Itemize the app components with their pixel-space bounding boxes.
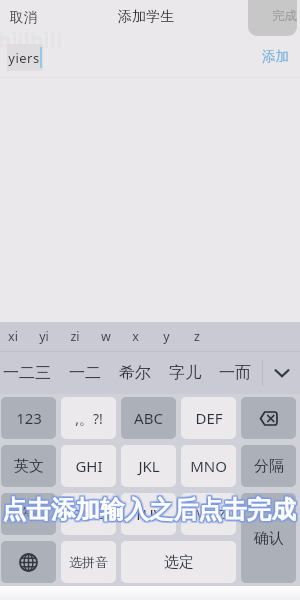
staticText: bilibili: [0, 26, 63, 50]
button[interactable]: 添加: [262, 48, 289, 65]
button[interactable]: PQRS: [61, 493, 116, 535]
staticText: PQRS: [72, 505, 106, 523]
staticText: yi: [39, 328, 49, 345]
button[interactable]: GHI: [61, 445, 116, 487]
staticText: 确认: [254, 529, 284, 548]
button[interactable]: Backspace: [241, 397, 296, 439]
button[interactable]: 一而: [219, 352, 251, 394]
staticText: 一而: [219, 363, 251, 383]
staticText: yiers: [8, 49, 40, 67]
staticText: 希尔: [119, 363, 151, 383]
button[interactable]: xi: [8, 322, 39, 351]
button[interactable]: x: [132, 322, 163, 351]
button[interactable]: 取消: [10, 0, 37, 34]
staticText: ,。?!: [75, 409, 103, 428]
staticText: 符: [21, 505, 36, 524]
button[interactable]: 分隔: [241, 445, 296, 487]
button[interactable]: 英文: [1, 445, 56, 487]
staticText: 点击添加输入之后点击完成: [1, 493, 295, 524]
staticText: 分隔: [254, 457, 284, 476]
staticText: 点击添加输入之后点击完成: [2, 492, 296, 523]
button[interactable]: WXYZ: [181, 493, 236, 535]
button[interactable]: 确认: [241, 493, 296, 583]
button[interactable]: 123: [1, 397, 56, 439]
staticText: y: [163, 328, 170, 345]
staticText: MNO: [190, 456, 227, 476]
staticText: 选定: [164, 553, 194, 572]
staticText: 英文: [14, 457, 44, 476]
button[interactable]: 字儿: [169, 352, 201, 394]
staticText: 点击添加输入之后点击完成: [1, 494, 295, 525]
other: Switch keyboard: [19, 553, 38, 572]
button[interactable]: yi: [39, 322, 70, 351]
staticText: GHI: [75, 456, 103, 476]
staticText: 点击添加输入之后点击完成: [4, 494, 298, 525]
staticText: 点击添加输入之后点击完成: [2, 496, 296, 527]
staticText: zi: [70, 328, 80, 345]
staticText: xi: [8, 328, 18, 345]
staticText: 点击添加输入之后点击完成: [2, 494, 296, 525]
button[interactable]: 选定: [121, 541, 236, 583]
staticText: z: [194, 328, 200, 345]
button[interactable]: 一二: [69, 352, 101, 394]
staticText: 取消: [10, 9, 37, 26]
staticText: WXYZ: [191, 505, 226, 523]
staticText: 字儿: [169, 363, 201, 383]
staticText: 点击添加输入之后点击完成: [1, 495, 295, 526]
staticText: 一二: [69, 363, 101, 383]
button[interactable]: y: [163, 322, 194, 351]
staticText: 添加: [262, 48, 289, 65]
staticText: 点击添加输入之后点击完成: [4, 496, 298, 527]
staticText: 点击添加输入之后点击完成: [4, 492, 298, 523]
staticText: x: [132, 328, 139, 345]
staticText: 点击添加输入之后点击完成: [0, 492, 294, 523]
staticText: 点击添加输入之后点击完成: [3, 494, 297, 525]
button[interactable]: Switch keyboard: [1, 541, 56, 583]
button[interactable]: 希尔: [119, 352, 151, 394]
button[interactable]: w: [101, 322, 132, 351]
staticText: 点击添加输入之后点击完成: [2, 495, 296, 526]
button[interactable]: ,。?!: [61, 397, 116, 439]
button[interactable]: 符: [1, 493, 56, 535]
staticText: 一二三: [3, 363, 51, 383]
staticText: 添加学生: [118, 8, 174, 26]
staticText: 点击添加输入之后点击完成: [3, 493, 297, 524]
staticText: 点击添加输入之后点击完成: [0, 494, 294, 525]
staticText: 123: [16, 408, 42, 428]
button[interactable]: DEF: [181, 397, 236, 439]
button[interactable]: MNO: [181, 445, 236, 487]
staticText: DEF: [195, 408, 223, 428]
staticText: ABC: [134, 408, 163, 428]
staticText: w: [101, 328, 111, 345]
staticText: 点击添加输入之后点击完成: [3, 495, 297, 526]
button[interactable]: 选拼音: [61, 541, 116, 583]
button[interactable]: Expand candidates: [263, 352, 300, 394]
staticText: TUV: [134, 504, 163, 524]
button[interactable]: ABC: [121, 397, 176, 439]
staticText: 完成: [272, 8, 297, 24]
button[interactable]: JKL: [121, 445, 176, 487]
button[interactable]: z: [194, 322, 225, 351]
staticText: 点击添加输入之后点击完成: [2, 493, 296, 524]
button[interactable]: TUV: [121, 493, 176, 535]
staticText: 选拼音: [69, 554, 108, 570]
staticText: 点击添加输入之后点击完成: [0, 496, 294, 527]
staticText: JKL: [138, 456, 160, 476]
button[interactable]: zi: [70, 322, 101, 351]
other: Backspace: [259, 411, 278, 426]
button[interactable]: 一二三: [3, 352, 51, 394]
button[interactable]: [248, 0, 297, 36]
